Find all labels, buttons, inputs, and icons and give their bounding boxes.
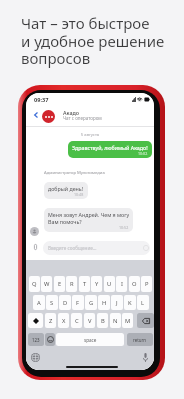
button[interactable]: N: [110, 313, 121, 328]
staticText: R: [70, 280, 74, 288]
staticText: Администратор Мультимедиа: [44, 170, 105, 176]
button[interactable]: W: [41, 276, 52, 292]
staticText: 10:48: [74, 192, 84, 197]
button[interactable]: U: [104, 276, 115, 292]
staticText: U: [107, 280, 112, 288]
staticText: G: [89, 299, 94, 307]
staticText: Меня зовут Андрей. Чем я могу Вам помочь…: [48, 211, 129, 225]
button[interactable]: G: [85, 295, 97, 310]
staticText: 09:37: [34, 96, 49, 104]
button[interactable]: D: [59, 295, 71, 310]
button[interactable]: B: [97, 313, 108, 328]
staticText: A: [37, 299, 41, 307]
staticText: J: [116, 299, 118, 307]
button[interactable]: M: [122, 313, 133, 328]
staticText: space: [84, 337, 97, 343]
staticText: M: [125, 317, 131, 325]
staticText: Акадо: [63, 109, 80, 116]
staticText: P: [145, 280, 149, 288]
staticText: Q: [32, 280, 37, 288]
button[interactable]: K: [124, 295, 136, 310]
staticText: F: [76, 299, 80, 307]
button[interactable]: space: [56, 333, 124, 346]
staticText: K: [128, 299, 132, 307]
staticText: 10:02: [138, 151, 148, 156]
staticText: Здравствуй, любимый Акадо!: [72, 144, 148, 151]
button[interactable]: Voice input: [139, 351, 151, 363]
staticText: S: [50, 299, 54, 307]
staticText: E: [58, 280, 62, 288]
staticText: Чат с оператором: [63, 115, 102, 121]
staticText: N: [113, 317, 118, 325]
button[interactable]: return: [127, 333, 153, 346]
staticText: I: [121, 280, 123, 288]
button[interactable]: Q: [29, 276, 40, 292]
button[interactable]: F: [72, 295, 84, 310]
staticText: Введите сообщение...: [48, 245, 97, 251]
button[interactable]: H: [98, 295, 110, 310]
button[interactable]: J: [111, 295, 123, 310]
staticText: B: [101, 317, 105, 325]
button[interactable]: T: [79, 276, 90, 292]
button[interactable]: 123: [28, 333, 44, 346]
button[interactable]: Z: [45, 313, 56, 328]
staticText: 123: [32, 337, 40, 343]
button[interactable]: X: [58, 313, 69, 328]
button[interactable]: S: [46, 295, 58, 310]
button[interactable]: O: [129, 276, 140, 292]
button[interactable]: R: [66, 276, 77, 292]
button[interactable]: L: [137, 295, 149, 310]
staticText: H: [102, 299, 107, 307]
staticText: W: [44, 280, 50, 288]
button[interactable]: C: [71, 313, 82, 328]
staticText: добрый день!: [48, 185, 84, 192]
button[interactable]: A: [33, 295, 45, 310]
staticText: Z: [49, 317, 53, 325]
staticText: return: [133, 337, 147, 343]
staticText: 5 августа: [26, 132, 154, 138]
staticText: O: [132, 280, 137, 288]
button[interactable]: V: [84, 313, 95, 328]
staticText: D: [63, 299, 68, 307]
button[interactable]: Change language: [29, 351, 41, 363]
button[interactable]: Attach file: [31, 242, 40, 251]
button[interactable]: Shift: [28, 313, 43, 328]
button[interactable]: P: [141, 276, 152, 292]
button[interactable]: Backspace: [137, 313, 154, 328]
button[interactable]: E: [54, 276, 65, 292]
staticText: V: [88, 317, 92, 325]
staticText: X: [62, 317, 66, 325]
staticText: C: [75, 317, 79, 325]
staticText: Чат – это быстрое и удобное решение вопр…: [21, 13, 165, 68]
button[interactable]: I: [116, 276, 127, 292]
button[interactable]: Введите сообщение...: [43, 241, 150, 255]
button[interactable]: Y: [91, 276, 102, 292]
staticText: 10:52: [119, 225, 129, 230]
staticText: L: [141, 299, 145, 307]
staticText: Y: [95, 280, 99, 288]
button[interactable]: Emoji: [45, 333, 55, 346]
button[interactable]: Back: [30, 109, 42, 121]
staticText: T: [83, 280, 87, 288]
